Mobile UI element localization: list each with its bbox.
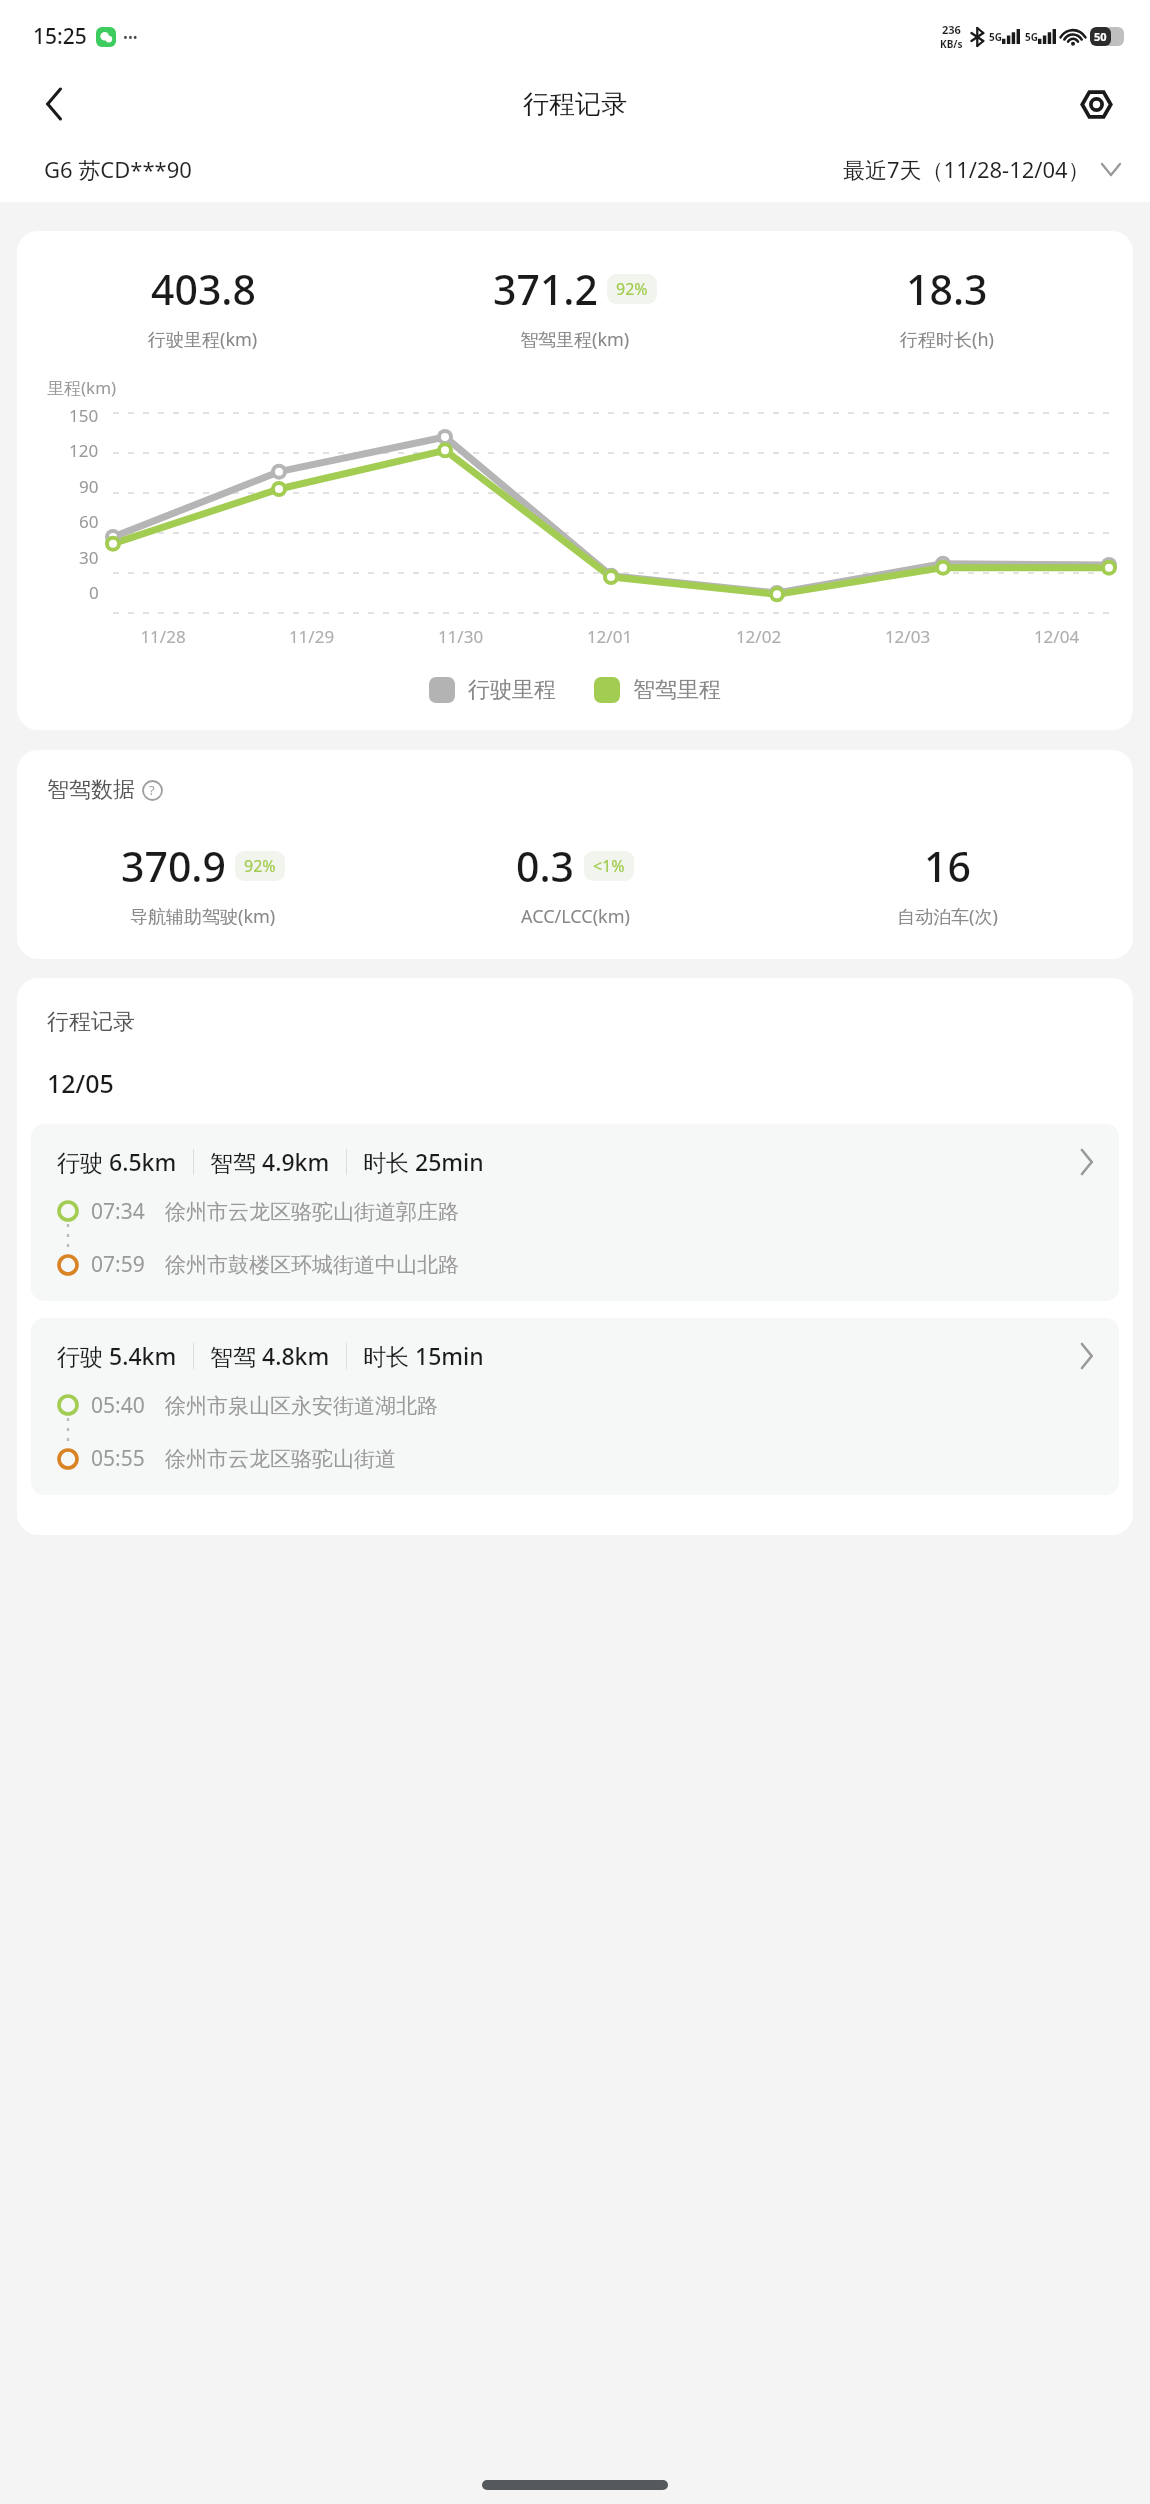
staticText: 徐州市云龙区骆驼山街道郭庄路 bbox=[165, 1199, 459, 1225]
button[interactable]: 最近7天（11/28-12/04） bbox=[843, 154, 1120, 184]
staticText: 导航辅助驾驶(km) bbox=[130, 904, 276, 929]
staticText: 236 bbox=[942, 22, 961, 37]
staticText: 时长 25min bbox=[363, 1146, 484, 1177]
button[interactable]: Back bbox=[26, 76, 82, 132]
button[interactable]: 行驶 5.4km bbox=[31, 1318, 1119, 1495]
staticText: 11/29 bbox=[237, 625, 386, 648]
staticText: ? bbox=[149, 781, 155, 799]
staticText: 150 bbox=[69, 404, 99, 427]
staticText: 92% bbox=[616, 278, 648, 300]
staticText: ACC/LCC(km) bbox=[521, 904, 630, 929]
staticText: 90 bbox=[79, 475, 99, 498]
staticText: 15:25 bbox=[33, 22, 87, 51]
staticText: 徐州市泉山区永安街道湖北路 bbox=[165, 1393, 438, 1419]
staticText: 11/28 bbox=[89, 625, 237, 648]
staticText: 徐州市云龙区骆驼山街道 bbox=[165, 1446, 396, 1472]
staticText: 12/05 bbox=[47, 1066, 114, 1100]
staticText: 05:55 bbox=[91, 1444, 145, 1473]
staticText: 里程(km) bbox=[47, 376, 117, 399]
staticText: 07:59 bbox=[91, 1250, 145, 1279]
staticText: 07:34 bbox=[91, 1197, 145, 1226]
staticText: 12/02 bbox=[684, 625, 833, 648]
staticText: 行驶里程 bbox=[468, 676, 556, 704]
staticText: 12/01 bbox=[535, 625, 684, 648]
staticText: 智驾 4.9km bbox=[210, 1146, 330, 1177]
staticText: 时长 15min bbox=[363, 1340, 484, 1371]
button[interactable]: Settings bbox=[1068, 76, 1124, 132]
staticText: 行程记录 bbox=[523, 88, 627, 121]
staticText: 智驾里程 bbox=[633, 676, 721, 704]
staticText: 行驶 5.4km bbox=[57, 1340, 177, 1371]
staticText: ••• bbox=[123, 28, 138, 46]
staticText: 403.8 bbox=[151, 261, 256, 317]
staticText: 12/04 bbox=[982, 625, 1131, 648]
staticText: 16 bbox=[924, 838, 971, 894]
staticText: 行驶 6.5km bbox=[57, 1146, 177, 1177]
staticText: G6 苏CD***90 bbox=[44, 154, 192, 184]
staticText: 370.9 bbox=[121, 838, 226, 894]
button[interactable]: 行驶 6.5km bbox=[31, 1124, 1119, 1301]
staticText: 5G bbox=[1025, 30, 1038, 44]
staticText: 0 bbox=[89, 581, 99, 604]
staticText: 5G bbox=[989, 30, 1002, 44]
staticText: 行程时长(h) bbox=[900, 327, 994, 352]
staticText: 50 bbox=[1094, 29, 1107, 44]
staticText: KB/s bbox=[940, 37, 963, 51]
staticText: 智驾数据 bbox=[47, 776, 135, 804]
staticText: 120 bbox=[69, 439, 99, 462]
staticText: 11/30 bbox=[386, 625, 535, 648]
button[interactable]: Help bbox=[139, 777, 165, 803]
staticText: 371.2 bbox=[493, 261, 598, 317]
staticText: 行驶里程(km) bbox=[148, 327, 258, 352]
staticText: <1% bbox=[593, 855, 625, 877]
staticText: 0.3 bbox=[516, 838, 575, 894]
staticText: 12/03 bbox=[833, 625, 982, 648]
staticText: 行程记录 bbox=[47, 1008, 135, 1036]
staticText: 60 bbox=[79, 510, 99, 533]
button[interactable]: G6 苏CD***90 bbox=[44, 154, 192, 184]
staticText: 最近7天（11/28-12/04） bbox=[843, 154, 1090, 184]
staticText: 92% bbox=[244, 855, 276, 877]
staticText: 18.3 bbox=[906, 261, 988, 317]
staticText: 智驾 4.8km bbox=[210, 1340, 330, 1371]
staticText: 自动泊车(次) bbox=[897, 904, 998, 929]
staticText: 徐州市鼓楼区环城街道中山北路 bbox=[165, 1252, 459, 1278]
staticText: 30 bbox=[79, 546, 99, 569]
staticText: 智驾里程(km) bbox=[520, 327, 630, 352]
staticText: 05:40 bbox=[91, 1391, 145, 1420]
